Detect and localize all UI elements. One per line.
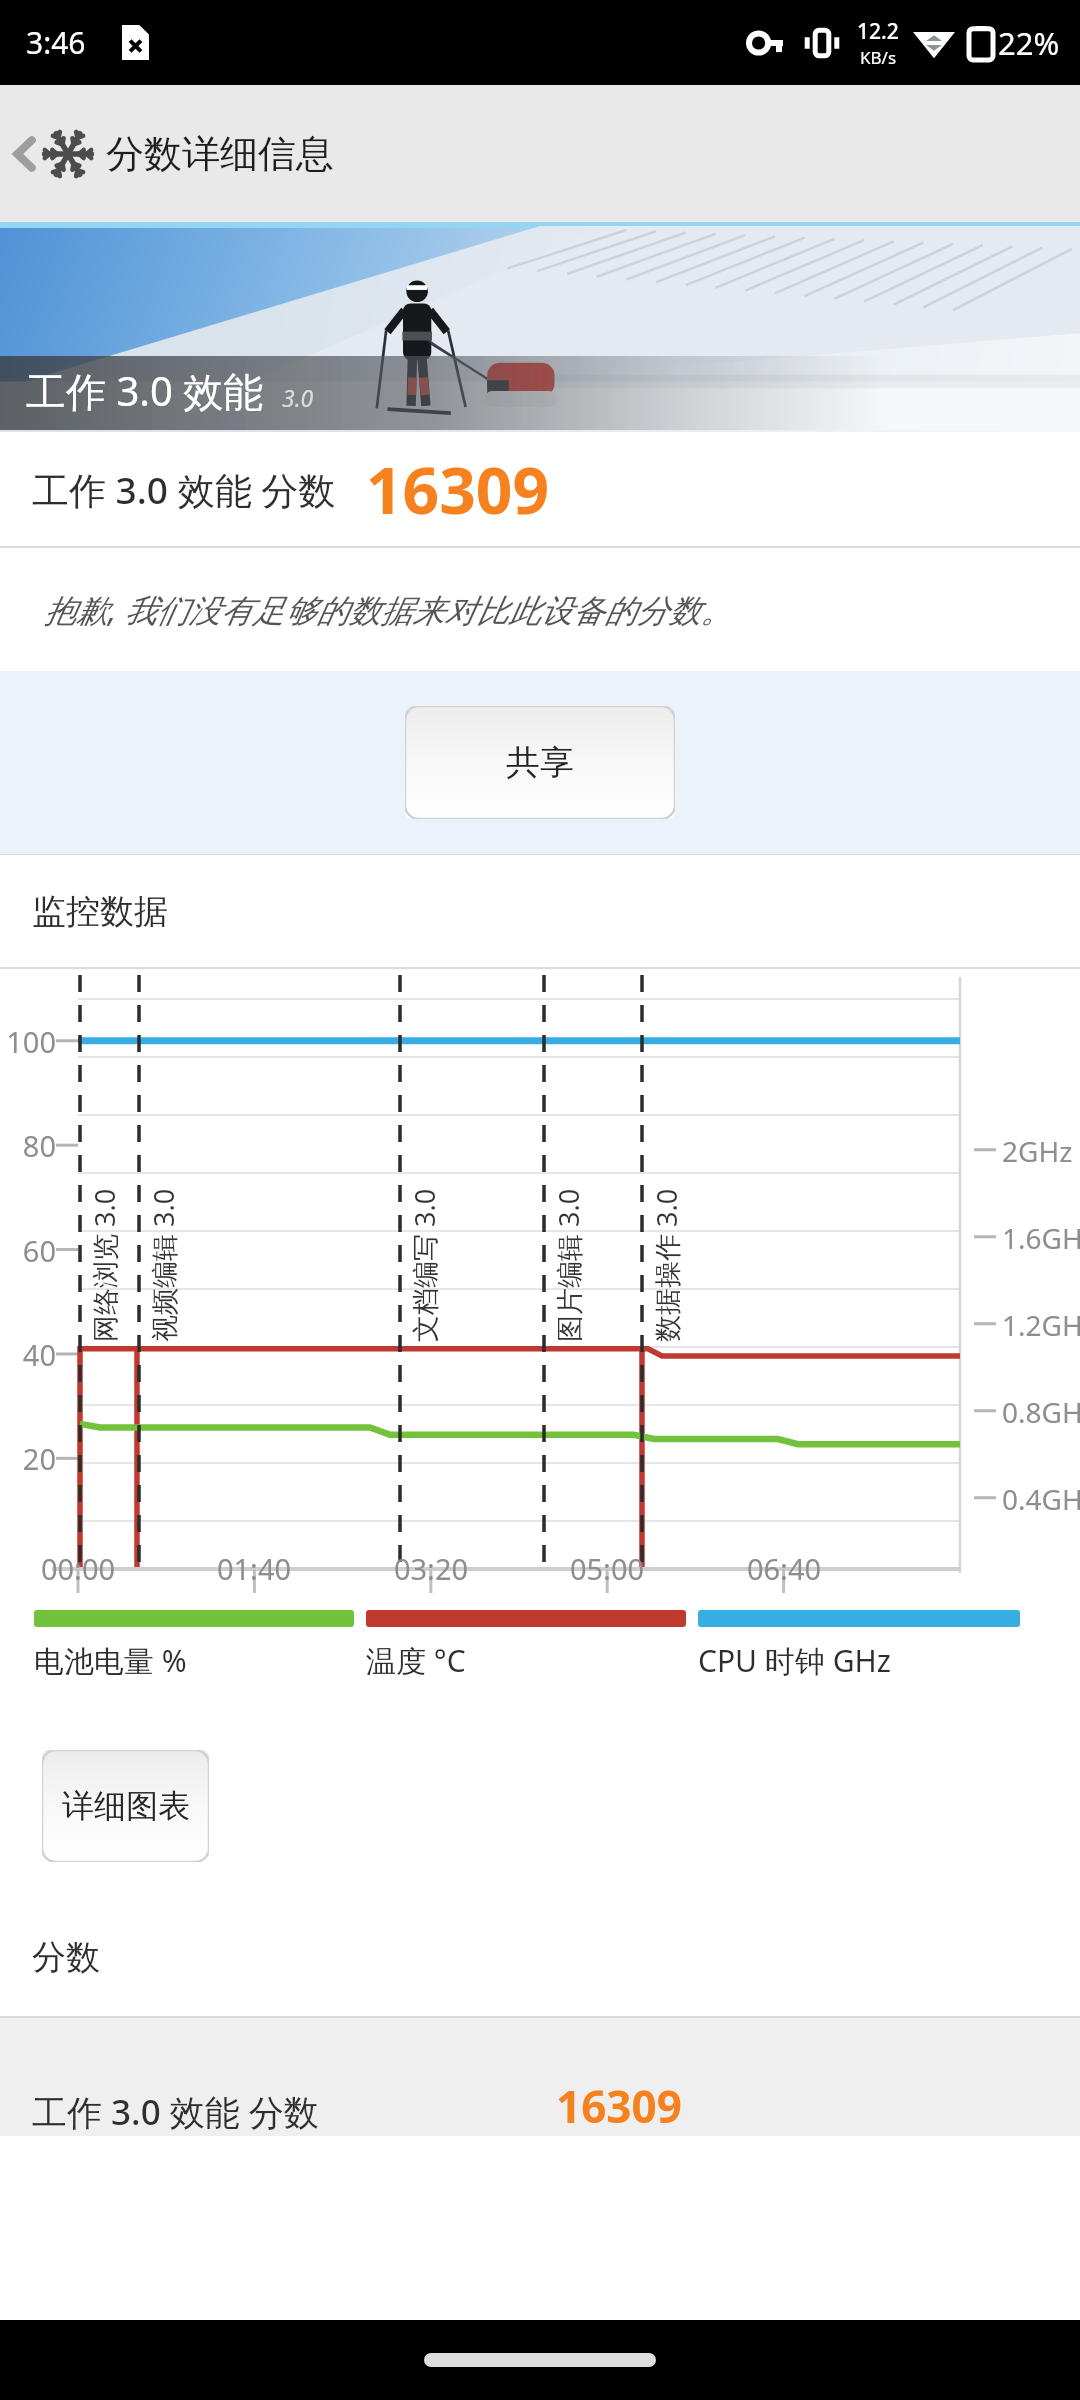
staticText: 工作 3.0 效能 — [26, 363, 264, 418]
staticText: CPU 时钟 GHz — [698, 1640, 891, 1681]
staticText: 06:40 — [728, 1549, 840, 1588]
button[interactable]: 共享 — [405, 706, 675, 819]
staticText: 1.2GHz — [1002, 1306, 1080, 1344]
staticText: 详细图表 — [62, 1786, 190, 1826]
staticText: 分数 — [32, 1936, 100, 1979]
staticText: 40 — [4, 1335, 56, 1374]
staticText: 1.6GHz — [1002, 1219, 1080, 1257]
staticText: 01:40 — [198, 1549, 310, 1588]
button[interactable]: 详细图表 — [42, 1750, 209, 1862]
staticText: 05:00 — [551, 1549, 663, 1588]
staticText: 工作 3.0 效能 分数 — [32, 2088, 319, 2136]
staticText: 2GHz — [1002, 1132, 1073, 1170]
staticText: 监控数据 — [32, 890, 168, 933]
button[interactable]: Back — [10, 85, 94, 222]
staticText: 16309 — [366, 446, 550, 533]
staticText: KB/s — [860, 46, 897, 69]
staticText: 文档编写 3.0 — [406, 1188, 443, 1342]
staticText: 分数详细信息 — [106, 130, 334, 178]
staticText: 03:20 — [375, 1549, 487, 1588]
staticText: 温度 °C — [366, 1640, 466, 1681]
staticText: 00:00 — [22, 1549, 134, 1588]
staticText: 3.0 — [276, 382, 314, 413]
staticText: 12.2 — [857, 17, 899, 46]
staticText: 图片编辑 3.0 — [550, 1188, 587, 1342]
staticText: 100 — [4, 1022, 56, 1061]
staticText: 电池电量 % — [34, 1640, 187, 1681]
staticText: 3:46 — [26, 22, 86, 63]
staticText: 20 — [4, 1439, 56, 1478]
staticText: 80 — [4, 1126, 56, 1165]
staticText: 22% — [998, 22, 1060, 64]
staticText: 视频编辑 3.0 — [145, 1188, 182, 1342]
staticText: 工作 3.0 效能 分数 — [32, 464, 336, 515]
staticText: 抱歉, 我们没有足够的数据来对比此设备的分数。 — [44, 588, 733, 632]
staticText: 共享 — [506, 741, 574, 784]
staticText: 60 — [4, 1231, 56, 1270]
staticText: 数据操作 3.0 — [648, 1188, 685, 1342]
staticText: 0.4GHz — [1002, 1480, 1080, 1518]
staticText: 0.8GHz — [1002, 1393, 1080, 1431]
staticText: 16309 — [556, 2076, 682, 2136]
staticText: 网络浏览 3.0 — [86, 1188, 123, 1342]
